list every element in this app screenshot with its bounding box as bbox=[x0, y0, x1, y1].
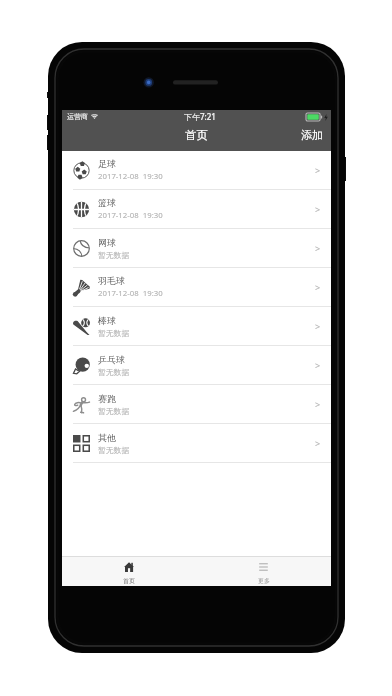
staticText: 暂无数据 bbox=[98, 445, 130, 455]
staticText: 运营商 bbox=[67, 112, 88, 121]
staticText: > bbox=[315, 398, 321, 410]
staticText: 添加 bbox=[301, 128, 323, 142]
staticText: 下午7:21 bbox=[184, 111, 216, 122]
staticText: 2017-12-08 19:30 bbox=[98, 171, 163, 182]
button[interactable]: 网球 bbox=[62, 229, 331, 268]
staticText: > bbox=[315, 281, 321, 293]
staticText: 羽毛球 bbox=[98, 275, 125, 286]
staticText: > bbox=[315, 320, 321, 332]
button[interactable]: 棒球 bbox=[62, 307, 331, 346]
button[interactable]: 足球 bbox=[62, 151, 331, 190]
button[interactable]: 羽毛球 bbox=[62, 268, 331, 307]
staticText: 首页 bbox=[123, 577, 135, 585]
staticText: > bbox=[315, 359, 321, 371]
staticText: > bbox=[315, 203, 321, 215]
staticText: 暂无数据 bbox=[98, 250, 130, 260]
staticText: > bbox=[315, 242, 321, 254]
staticText: 足球 bbox=[98, 158, 116, 169]
staticText: 更多 bbox=[258, 577, 270, 585]
staticText: 乒乓球 bbox=[98, 354, 125, 365]
button[interactable]: 添加 bbox=[292, 123, 331, 151]
staticText: 首页 bbox=[185, 128, 208, 142]
staticText: 网球 bbox=[98, 237, 116, 248]
button[interactable]: 乒乓球 bbox=[62, 346, 331, 385]
staticText: 篮球 bbox=[98, 197, 116, 208]
staticText: 暂无数据 bbox=[98, 406, 130, 416]
staticText: > bbox=[315, 164, 321, 176]
staticText: 暂无数据 bbox=[98, 367, 130, 377]
button[interactable]: 其他 bbox=[62, 424, 331, 463]
button[interactable]: 赛跑 bbox=[62, 385, 331, 424]
staticText: 2017-12-08 19:30 bbox=[98, 288, 163, 299]
button[interactable]: 首页 bbox=[62, 557, 196, 586]
staticText: 赛跑 bbox=[98, 393, 116, 404]
staticText: 2017-12-08 19:30 bbox=[98, 210, 163, 221]
staticText: 棒球 bbox=[98, 315, 116, 326]
button[interactable]: 篮球 bbox=[62, 190, 331, 229]
staticText: 暂无数据 bbox=[98, 328, 130, 338]
staticText: 其他 bbox=[98, 432, 116, 443]
button[interactable]: 更多 bbox=[196, 557, 331, 586]
staticText: > bbox=[315, 437, 321, 449]
